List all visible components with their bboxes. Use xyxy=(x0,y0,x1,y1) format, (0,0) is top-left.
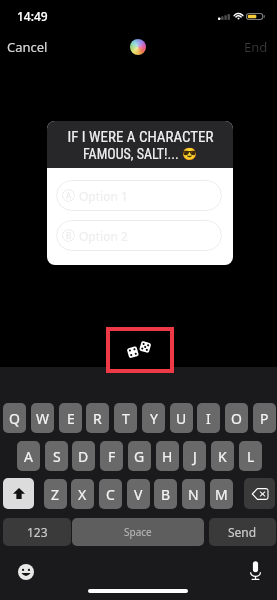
staticText: W xyxy=(36,409,50,428)
staticText: 123 xyxy=(27,524,48,540)
staticText: H xyxy=(162,447,173,466)
button[interactable]: Color picker xyxy=(130,39,146,55)
staticText: Z xyxy=(51,485,60,504)
button[interactable]: O xyxy=(225,403,248,433)
staticText: K xyxy=(218,447,227,466)
button[interactable]: C xyxy=(99,479,122,509)
staticText: T xyxy=(122,409,130,428)
staticText: F xyxy=(108,447,116,466)
staticText: 😎 xyxy=(182,147,197,161)
staticText: X xyxy=(78,485,87,504)
staticText: Cancel xyxy=(7,38,48,54)
button[interactable]: R xyxy=(86,403,109,433)
staticText: B xyxy=(66,230,72,241)
staticText: Send xyxy=(228,524,257,540)
button[interactable]: B xyxy=(154,479,177,509)
staticText: Y xyxy=(150,409,158,428)
staticText: U xyxy=(176,409,187,428)
staticText: P xyxy=(260,409,269,428)
button[interactable]: X xyxy=(71,479,94,509)
button[interactable]: K xyxy=(211,441,234,471)
button[interactable]: B xyxy=(56,220,222,251)
button[interactable]: N xyxy=(182,479,205,509)
button[interactable]: Cancel xyxy=(0,34,58,58)
staticText: E xyxy=(67,409,75,428)
button[interactable]: H xyxy=(156,441,179,471)
staticText: FAMOUS, SALT!... xyxy=(83,146,179,162)
button[interactable]: E xyxy=(59,403,82,433)
button[interactable]: Dictation xyxy=(243,558,267,582)
button[interactable]: M xyxy=(210,479,233,509)
button[interactable]: 123 xyxy=(3,518,71,546)
staticText: Space xyxy=(124,525,152,539)
button[interactable]: A xyxy=(17,441,40,471)
button[interactable]: Shuffle xyxy=(106,327,174,373)
staticText: M xyxy=(215,485,228,504)
button[interactable]: T xyxy=(114,403,137,433)
staticText: G xyxy=(134,447,145,466)
staticText: IF I WERE A CHARACTER xyxy=(67,128,214,146)
button[interactable]: End xyxy=(234,34,277,58)
staticText: Q xyxy=(9,409,20,428)
button[interactable]: S xyxy=(45,441,68,471)
staticText: I xyxy=(206,409,211,428)
button[interactable]: Z xyxy=(44,479,67,509)
staticText: D xyxy=(78,447,89,466)
staticText: 14:49 xyxy=(17,8,48,24)
staticText: End xyxy=(244,38,268,54)
staticText: L xyxy=(247,447,255,466)
button[interactable]: D xyxy=(72,441,95,471)
staticText: S xyxy=(53,447,61,466)
button[interactable]: V xyxy=(127,479,150,509)
staticText: B xyxy=(161,485,171,504)
button[interactable]: Emoji keyboard xyxy=(14,560,38,584)
staticText: Option 2 xyxy=(79,228,128,244)
staticText: A xyxy=(66,190,72,201)
button[interactable]: J xyxy=(183,441,206,471)
button[interactable]: Y xyxy=(142,403,165,433)
button[interactable]: F xyxy=(100,441,123,471)
button[interactable]: Q xyxy=(3,403,26,433)
button[interactable]: W xyxy=(31,403,54,433)
button[interactable]: Shift xyxy=(3,478,34,509)
button[interactable]: A xyxy=(56,180,222,211)
staticText: Option 1 xyxy=(79,188,128,204)
button[interactable]: I xyxy=(197,403,220,433)
button[interactable]: Send xyxy=(209,518,276,546)
staticText: V xyxy=(134,485,143,504)
button[interactable]: G xyxy=(128,441,151,471)
staticText: R xyxy=(93,409,102,428)
button[interactable]: U xyxy=(170,403,193,433)
staticText: A xyxy=(24,447,33,466)
staticText: N xyxy=(188,485,199,504)
staticText: J xyxy=(193,447,197,466)
button[interactable]: L xyxy=(239,441,262,471)
button[interactable]: P xyxy=(253,403,276,433)
button[interactable]: Space xyxy=(72,518,204,546)
staticText: C xyxy=(106,485,115,504)
button[interactable]: Backspace xyxy=(244,478,275,509)
staticText: O xyxy=(231,409,242,428)
